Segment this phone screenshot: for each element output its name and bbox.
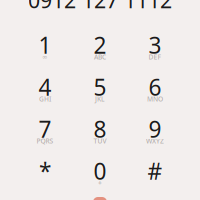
staticText: ABC [94, 53, 106, 61]
staticText: PQRS [36, 137, 53, 145]
button[interactable]: 5 [72, 71, 127, 113]
button[interactable]: 4 [17, 71, 72, 113]
staticText: DEF [148, 53, 161, 61]
staticText: 5 [93, 72, 106, 102]
staticText: 6 [148, 72, 161, 102]
button[interactable]: 0 [72, 155, 127, 197]
staticText: JKL [95, 95, 105, 103]
staticText: 4 [38, 72, 51, 102]
button[interactable]: # [127, 155, 182, 197]
staticText: 0912 127 1112 [28, 0, 172, 14]
staticText: # [147, 156, 162, 186]
staticText: + [98, 179, 102, 187]
button[interactable]: Call [78, 194, 122, 200]
staticText: 8 [93, 114, 106, 144]
staticText: 3 [148, 30, 161, 60]
staticText: ∞ [42, 53, 48, 61]
staticText: MNO [147, 95, 163, 103]
staticText: 9 [148, 114, 161, 144]
staticText: TUV [93, 137, 106, 145]
button[interactable]: 8 [72, 113, 127, 155]
button[interactable]: 9 [127, 113, 182, 155]
staticText: WXYZ [146, 137, 164, 145]
staticText: * [39, 156, 51, 186]
button[interactable]: * [17, 155, 72, 197]
button[interactable]: 7 [17, 113, 72, 155]
button[interactable]: 2 [72, 29, 127, 71]
button[interactable]: 6 [127, 71, 182, 113]
staticText: 7 [38, 114, 51, 144]
staticText: GHI [39, 95, 51, 103]
staticText: 2 [93, 30, 106, 60]
button[interactable]: 1 [17, 29, 72, 71]
staticText: 0 [93, 156, 106, 186]
staticText: 1 [38, 30, 51, 60]
button[interactable]: 3 [127, 29, 182, 71]
